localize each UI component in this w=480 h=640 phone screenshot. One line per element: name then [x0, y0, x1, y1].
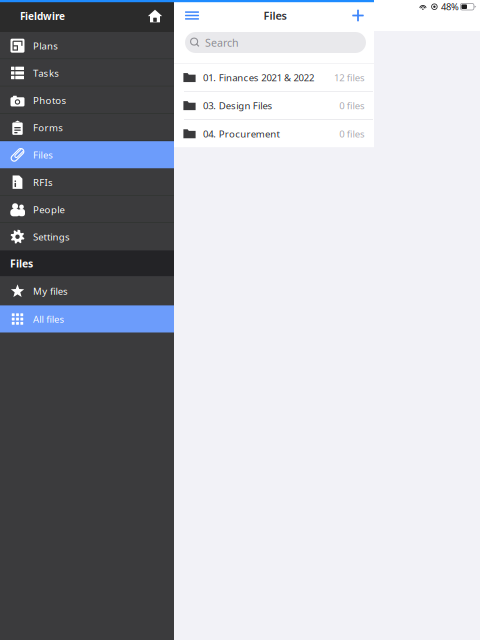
button[interactable]: Photos: [0, 87, 174, 114]
button[interactable]: Tasks: [0, 59, 174, 87]
staticText: 0 files: [339, 127, 365, 140]
staticText: Tasks: [33, 67, 59, 79]
button[interactable]: Forms: [0, 114, 174, 141]
staticText: 01. Finances 2021 & 2022: [203, 71, 314, 84]
staticText: Files: [263, 8, 286, 23]
staticText: My files: [33, 284, 68, 297]
staticText: Fieldwire: [20, 9, 65, 23]
staticText: 04. Procurement: [203, 127, 279, 140]
staticText: All files: [33, 313, 64, 325]
staticText: People: [33, 203, 64, 216]
staticText: RFIs: [33, 176, 53, 188]
staticText: Plans: [33, 39, 58, 52]
staticText: 48%: [441, 0, 459, 13]
button[interactable]: Add: [348, 5, 368, 25]
button[interactable]: Plans: [0, 32, 174, 59]
staticText: Files: [33, 148, 53, 161]
staticText: Files: [10, 256, 33, 270]
button[interactable]: Menu: [182, 5, 202, 25]
button[interactable]: 04. Procurement: [174, 120, 374, 147]
button[interactable]: Home: [147, 8, 163, 24]
button[interactable]: My files: [0, 276, 174, 305]
button[interactable]: 03. Design Files: [174, 92, 374, 119]
staticText: 03. Design Files: [203, 99, 272, 112]
button[interactable]: 01. Finances 2021 & 2022: [174, 64, 374, 91]
staticText: Settings: [33, 230, 70, 243]
button[interactable]: All files: [0, 305, 174, 333]
staticText: 0 files: [339, 99, 365, 112]
staticText: 12 files: [334, 71, 365, 84]
button[interactable]: RFIs: [0, 168, 174, 196]
staticText: Forms: [33, 121, 63, 134]
button[interactable]: Files: [0, 141, 174, 168]
staticText: Photos: [33, 94, 66, 107]
button[interactable]: Settings: [0, 223, 174, 250]
button[interactable]: People: [0, 196, 174, 223]
staticText: Search: [205, 35, 239, 50]
